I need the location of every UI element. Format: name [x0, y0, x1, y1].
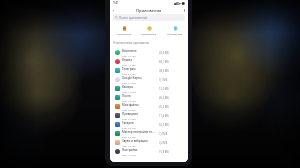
- button[interactable]: Поиск приложений: [113, 14, 185, 21]
- button[interactable]: Разрешения: [137, 26, 161, 35]
- button[interactable]: Яндекс: [110, 57, 188, 66]
- button[interactable]: Галерея: [110, 120, 188, 129]
- staticText: Камера: [122, 85, 133, 89]
- staticText: Кэш 8,7 МБ: [122, 72, 136, 75]
- staticText: Приложения: [136, 8, 162, 13]
- staticText: 11,4 МБ: [159, 114, 169, 118]
- staticText: Галерея: [122, 121, 134, 125]
- staticText: 7,4 МБ: [159, 132, 168, 136]
- button[interactable]: Хранилище: [112, 26, 136, 35]
- button[interactable]: Google Карты: [110, 75, 188, 84]
- staticText: Установленные приложения: [113, 41, 185, 45]
- staticText: Поиск приложений: [119, 16, 148, 20]
- staticText: Разрешения: [141, 32, 157, 35]
- staticText: Кэш 0,4 МБ: [122, 81, 136, 84]
- button[interactable]: Обновления: [163, 26, 187, 35]
- staticText: Телеграм: [122, 67, 136, 71]
- staticText: 38,4 МБ: [159, 69, 169, 73]
- staticText: 26,2 МБ: [159, 96, 169, 100]
- staticText: Вконтакте: [122, 49, 137, 53]
- button[interactable]: Назад: [110, 7, 117, 14]
- staticText: Звуки и вибрация: [122, 139, 148, 143]
- button[interactable]: Мастер настройки темы: [110, 129, 188, 138]
- staticText: 84,1 МБ: [159, 60, 169, 64]
- button[interactable]: Вконтакте: [110, 48, 188, 57]
- staticText: 22,6 МБ: [159, 51, 169, 55]
- staticText: 3,2 МБ: [159, 141, 168, 145]
- staticText: 12,0 МБ: [159, 87, 169, 91]
- staticText: Хранилище: [117, 32, 132, 35]
- staticText: Кэш 0,1 МБ: [122, 135, 136, 138]
- button[interactable]: Ещё: [181, 7, 188, 14]
- staticText: Google Карты: [122, 76, 142, 80]
- staticText: 15,8 МБ: [159, 150, 169, 154]
- staticText: 9:41: [113, 1, 119, 5]
- staticText: Почта: [122, 94, 131, 98]
- button[interactable]: Телеграм: [110, 66, 188, 75]
- staticText: Кэш 1,1 МБ: [122, 63, 136, 66]
- button[interactable]: Мои файлы: [110, 102, 188, 111]
- button[interactable]: Звуки и вибрация: [110, 138, 188, 147]
- staticText: Настройки: [122, 148, 138, 152]
- staticText: 45,3 МБ: [159, 105, 169, 109]
- staticText: Кэш 5,6 МБ: [122, 126, 136, 129]
- staticText: Мои файлы: [122, 103, 139, 107]
- staticText: Кэш 2,0 МБ: [122, 117, 136, 120]
- staticText: Обновления: [167, 32, 183, 35]
- button[interactable]: Камера: [110, 84, 188, 93]
- staticText: Кэш 0,8 МБ: [122, 108, 136, 111]
- staticText: Яндекс: [122, 58, 133, 62]
- staticText: 9,1 МБ: [159, 78, 168, 82]
- staticText: Мастер настройки темы: [122, 130, 156, 134]
- staticText: Кэш 1,9 МБ: [122, 90, 136, 93]
- staticText: Кэш 0,3 МБ: [122, 144, 136, 147]
- staticText: Проводник: [122, 112, 139, 116]
- button[interactable]: Проводник: [110, 111, 188, 120]
- staticText: Кэш 2,4 МБ: [122, 54, 136, 57]
- button[interactable]: Настройки: [110, 147, 188, 156]
- staticText: 62,2 МБ: [159, 123, 169, 127]
- staticText: Кэш 3,3 МБ: [122, 99, 136, 102]
- staticText: Кэш 1,5 МБ: [122, 153, 136, 156]
- button[interactable]: Почта: [110, 93, 188, 102]
